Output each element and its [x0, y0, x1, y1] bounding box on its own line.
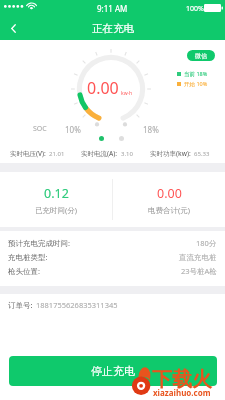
staticText: 实时电流(A):: [81, 149, 118, 158]
staticText: 3.10: [121, 150, 133, 158]
staticText: 21.01: [49, 150, 65, 158]
staticText: 实时电压(V):: [10, 149, 46, 158]
staticText: 充电桩类型:: [8, 252, 48, 262]
staticText: kw·h: [121, 90, 133, 97]
staticText: 下载火: [152, 367, 212, 392]
staticText: SOC: [33, 124, 47, 134]
staticText: 23号桩A枪: [181, 266, 217, 276]
staticText: 订单号:: [8, 300, 33, 310]
staticText: 已充时间(分): [35, 205, 77, 215]
staticText: 1881755626835311345: [36, 300, 118, 310]
staticText: 微信: [195, 52, 207, 60]
button[interactable]: 停止充电: [9, 356, 217, 386]
staticText: 0.12: [44, 185, 69, 202]
staticText: 电费合计(元): [148, 205, 190, 215]
button[interactable]: Back: [0, 16, 26, 40]
staticText: 当前 18%: [184, 70, 208, 78]
staticText: 正在充电: [92, 22, 134, 35]
staticText: 10%: [65, 124, 81, 135]
staticText: 9:11 AM: [97, 3, 128, 14]
staticText: 预计充电完成时间:: [8, 238, 71, 248]
staticText: 开始 10%: [184, 80, 208, 88]
staticText: 实时功率(kw):: [150, 149, 191, 158]
staticText: 停止充电: [91, 364, 135, 378]
staticText: 18%: [143, 124, 159, 135]
button[interactable]: 微信: [187, 50, 215, 61]
staticText: xiazaihuo.com: [153, 387, 211, 398]
staticText: 直流充电桩: [179, 253, 217, 262]
staticText: 65.33: [194, 150, 210, 158]
staticText: 枪头位置:: [8, 266, 41, 276]
staticText: 0.00: [87, 77, 119, 99]
staticText: 0.00: [157, 185, 182, 202]
staticText: 180分: [196, 238, 217, 248]
staticText: 100%: [186, 4, 204, 14]
